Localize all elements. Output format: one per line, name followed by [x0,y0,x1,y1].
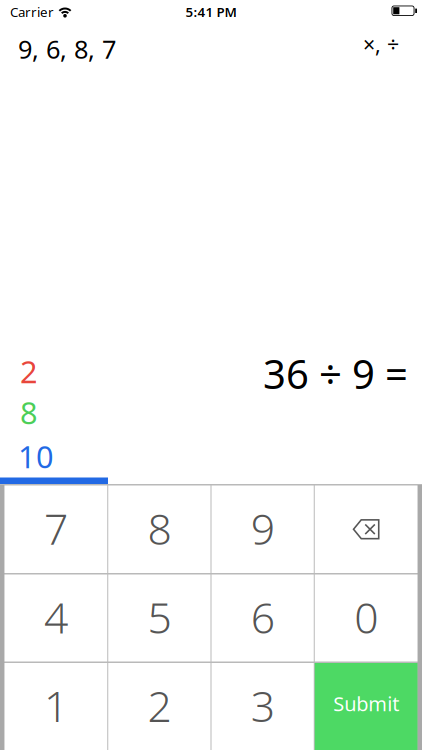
button[interactable] [315,485,418,573]
staticText: ×, ÷ [363,30,399,58]
staticText: 5 [147,589,171,645]
staticText: Carrier [10,3,54,21]
staticText: 0 [354,589,378,645]
staticText: 8 [147,500,171,557]
button[interactable]: 0 [315,574,418,661]
staticText: 7 [44,500,68,557]
staticText: 8 [20,392,38,433]
button[interactable]: 3 [211,663,314,750]
staticText: 36 ÷ 9 = [263,347,408,400]
staticText: 2 [20,351,38,392]
staticText: 10 [18,436,54,477]
staticText: 2 [147,677,171,734]
button[interactable]: 9 [211,485,314,573]
button[interactable]: 2 [108,663,210,750]
staticText: 6 [251,589,275,645]
staticText: 3 [251,677,275,734]
button[interactable]: ×, ÷ [363,30,399,58]
button[interactable]: 1 [4,663,107,750]
staticText: 9, 6, 8, 7 [18,32,116,66]
staticText: 4 [44,589,68,645]
button[interactable]: 7 [4,485,107,573]
button[interactable]: 5 [108,574,210,661]
staticText: 5:41 PM [185,3,236,21]
button[interactable]: 8 [108,485,210,573]
staticText: 9 [251,500,275,557]
button[interactable]: Submit [315,663,418,750]
staticText: Submit [333,690,399,717]
staticText: 1 [44,677,68,734]
button[interactable]: 4 [4,574,107,661]
button[interactable]: 6 [211,574,314,661]
